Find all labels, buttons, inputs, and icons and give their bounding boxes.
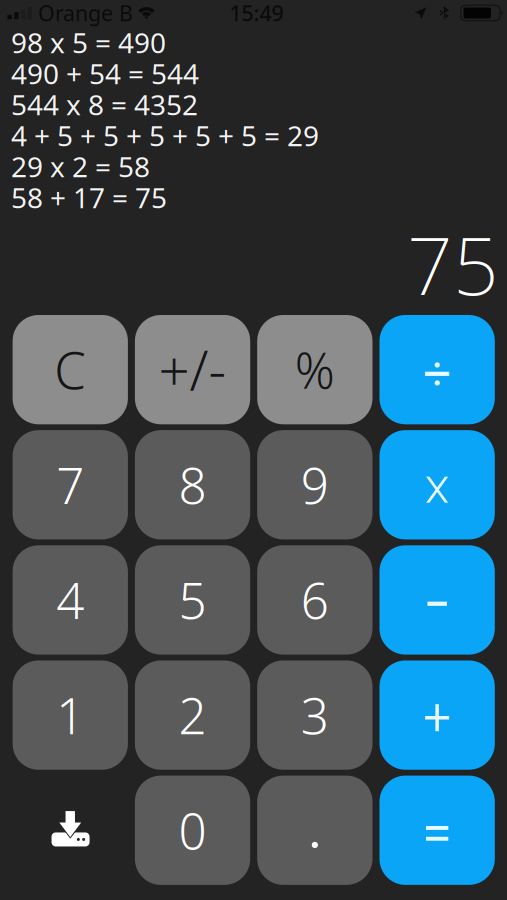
staticText: Orange B [38,0,133,27]
button[interactable]: Plus minus [135,315,250,424]
staticText: 9 [301,452,329,517]
staticText: 5 [179,567,207,633]
staticText: % [295,337,335,402]
staticText: 7 [56,452,84,517]
button[interactable]: 4 [13,545,128,655]
button[interactable]: 0 [135,776,250,885]
button[interactable]: Percent [257,315,372,424]
staticText: +/- [159,333,227,406]
button[interactable]: Multiply [379,430,495,539]
button[interactable]: Minus [379,545,495,655]
staticText: 29 x 2 = 58 [11,148,150,185]
button[interactable]: 2 [135,660,250,770]
button[interactable]: 1 [13,660,128,770]
button[interactable]: Save history [13,776,128,885]
staticText: 0 [179,797,207,863]
button[interactable]: 5 [135,545,250,655]
staticText: 2 [179,682,207,748]
staticText: 6 [301,567,329,633]
staticText: 3 [301,682,329,748]
staticText: 1 [56,682,84,748]
staticText: 98 x 5 = 490 [11,24,166,61]
button[interactable]: 8 [135,430,250,539]
staticText: 4 [56,567,84,633]
button[interactable]: 3 [257,660,372,770]
button[interactable]: 9 [257,430,372,539]
staticText: 4 + 5 + 5 + 5 + 5 + 5 = 29 [11,117,319,154]
staticText: 8 [179,452,207,517]
staticText: 490 + 54 = 544 [11,55,199,92]
staticText: 544 x 8 = 4352 [11,86,198,123]
button[interactable]: Clear [13,315,128,424]
button[interactable]: 7 [13,430,128,539]
staticText: 15:49 [229,0,283,27]
button[interactable]: Divide [379,315,495,424]
staticText: 58 + 17 = 75 [11,179,167,216]
button[interactable]: Equals [379,776,495,885]
button[interactable]: 6 [257,545,372,655]
button[interactable]: Decimal point [257,776,372,885]
button[interactable]: Plus [379,660,495,770]
staticText: 75 [407,211,499,317]
staticText: C [54,336,86,403]
